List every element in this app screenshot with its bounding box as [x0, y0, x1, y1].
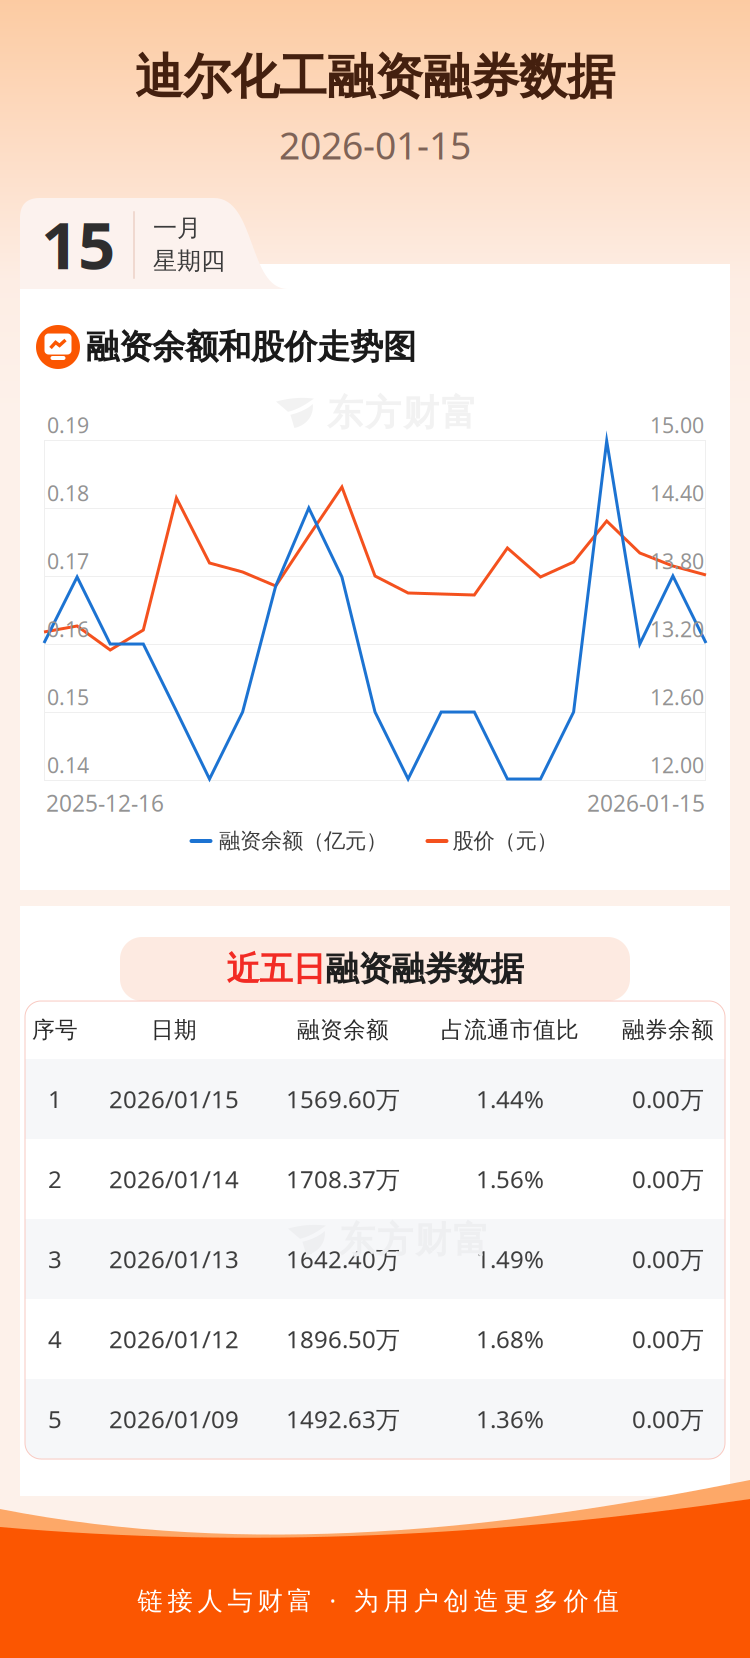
staticText: 0.00万 — [632, 1163, 704, 1195]
staticText: 1.68% — [476, 1323, 544, 1355]
staticText: 1642.40万 — [286, 1243, 400, 1275]
staticText: 2026-01-15 — [587, 788, 705, 818]
staticText: 2026/01/12 — [109, 1323, 239, 1355]
staticText: 融资余额（亿元） — [219, 828, 387, 854]
staticText: 1.56% — [476, 1163, 544, 1195]
staticText: 15.00 — [650, 411, 704, 439]
staticText: 15 — [41, 201, 115, 287]
staticText: 2025-12-16 — [46, 788, 164, 818]
staticText: 0.00万 — [632, 1323, 704, 1355]
staticText: 2026/01/13 — [109, 1243, 239, 1275]
staticText: 14.40 — [650, 479, 704, 507]
staticText: 1708.37万 — [286, 1163, 400, 1195]
staticText: 0.00万 — [632, 1083, 704, 1115]
staticText: 1896.50万 — [286, 1323, 400, 1355]
staticText: 0.18 — [47, 479, 89, 507]
staticText: 融资余额 — [297, 1016, 389, 1044]
staticText: 0.00万 — [632, 1243, 704, 1275]
staticText: 东方财富 — [339, 1218, 489, 1262]
staticText: 2026/01/15 — [109, 1083, 239, 1115]
staticText: 融券余额 — [622, 1016, 714, 1044]
staticText: 1 — [48, 1083, 62, 1115]
staticText: 3 — [48, 1243, 62, 1275]
staticText: 占流通市值比 — [441, 1016, 579, 1044]
staticText: 0.19 — [47, 411, 89, 439]
staticText: 1.49% — [476, 1243, 544, 1275]
staticText: 融资融券数据 — [325, 948, 523, 989]
staticText: 日期 — [151, 1016, 197, 1044]
staticText: 序号 — [32, 1016, 78, 1044]
staticText: 1569.60万 — [286, 1083, 400, 1115]
staticText: 2026/01/09 — [109, 1403, 239, 1435]
staticText: 2026/01/14 — [109, 1163, 239, 1195]
staticText: 0.14 — [47, 751, 89, 779]
staticText: 5 — [48, 1403, 62, 1435]
staticText: 0.16 — [47, 615, 89, 643]
staticText: 0.17 — [47, 547, 89, 575]
staticText: 股价（元） — [452, 828, 557, 854]
staticText: 链接人与财富 · 为用户创造更多价值 — [137, 1583, 618, 1617]
staticText: 13.80 — [650, 547, 704, 575]
staticText: 1492.63万 — [286, 1403, 400, 1435]
staticText: 迪尔化工融资融券数据 — [135, 47, 615, 106]
staticText: 1.44% — [476, 1083, 544, 1115]
staticText: 0.15 — [47, 683, 89, 711]
staticText: 4 — [48, 1323, 62, 1355]
staticText: 一月 — [153, 213, 201, 243]
staticText: 13.20 — [650, 615, 704, 643]
staticText: 2 — [48, 1163, 62, 1195]
staticText: 融资余额和股价走势图 — [86, 326, 416, 367]
staticText: 0.00万 — [632, 1403, 704, 1435]
staticText: 12.00 — [650, 751, 704, 779]
staticText: 东方财富 — [327, 391, 477, 435]
staticText: 2026-01-15 — [279, 120, 471, 170]
staticText: 12.60 — [650, 683, 704, 711]
staticText: 星期四 — [153, 246, 225, 276]
staticText: 近五日 — [226, 948, 325, 989]
staticText: 1.36% — [476, 1403, 544, 1435]
